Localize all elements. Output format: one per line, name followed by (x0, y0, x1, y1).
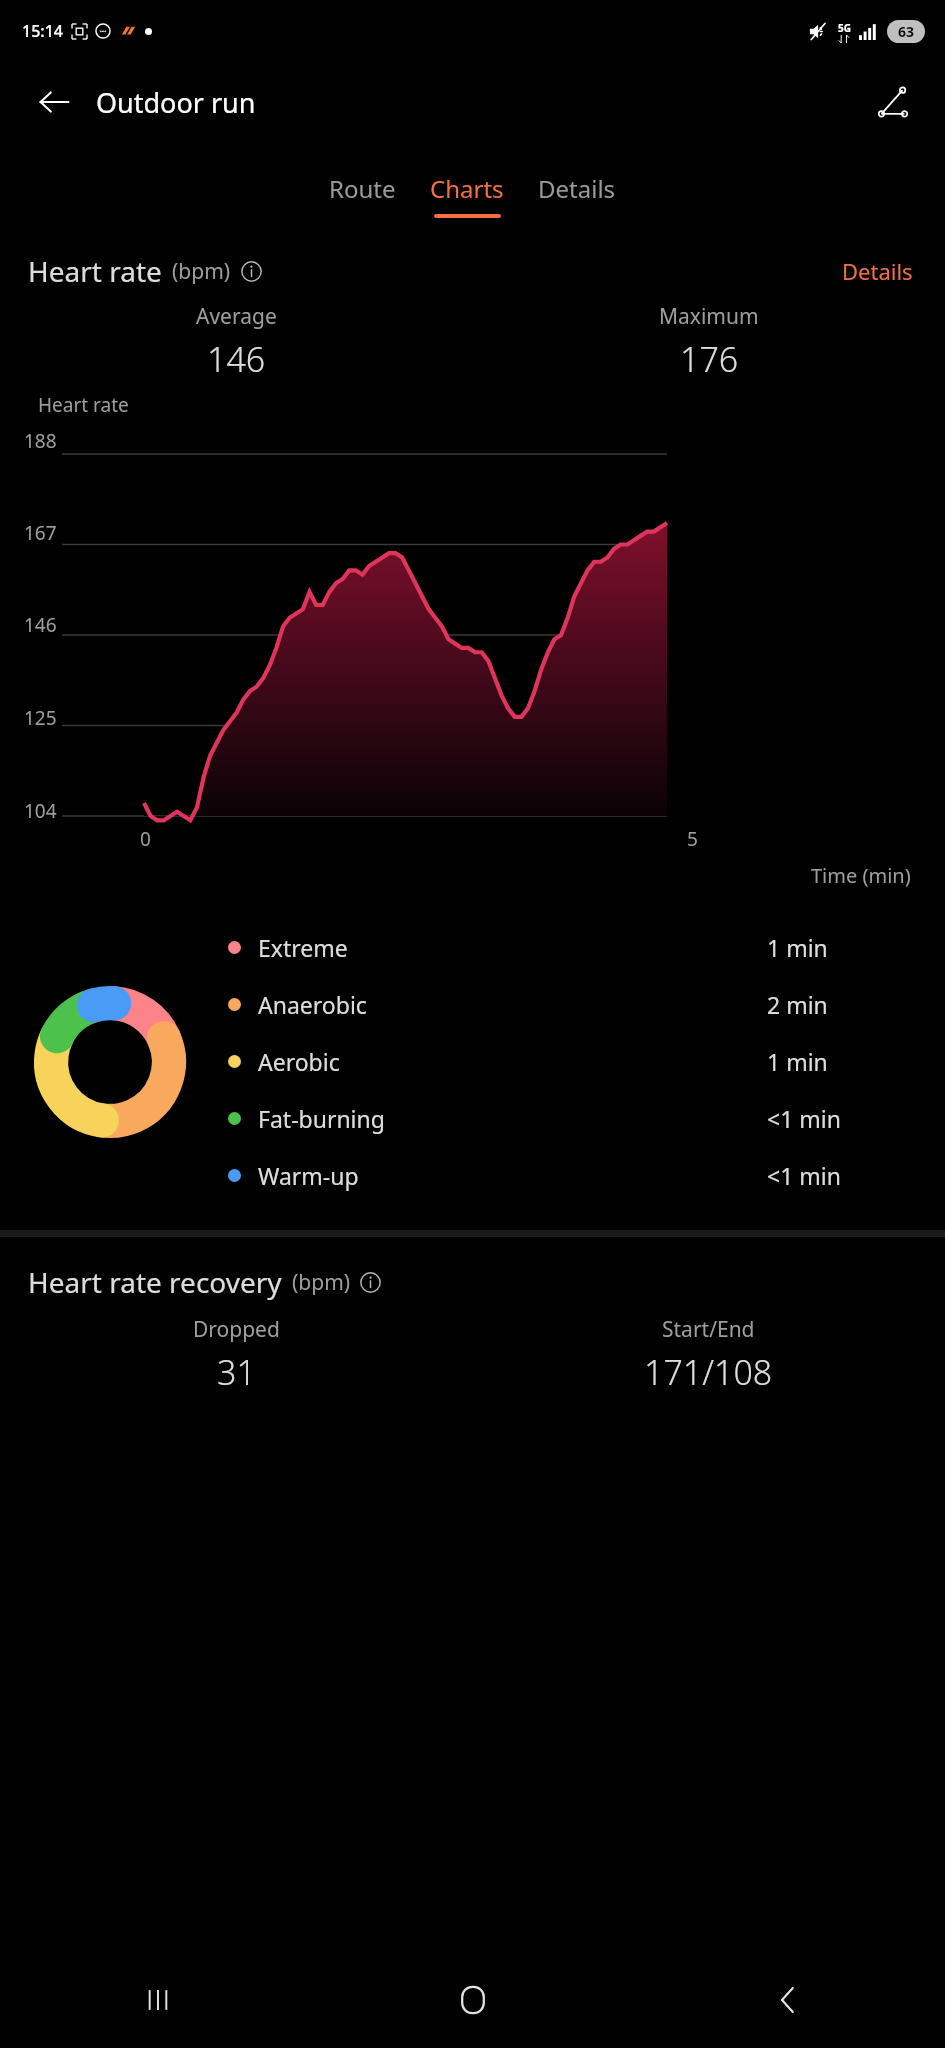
staticText: <1 min (767, 1160, 841, 1191)
staticText: Start/End (662, 1315, 755, 1344)
staticText: 1 min (767, 932, 828, 963)
staticText: Anaerobic (258, 989, 367, 1020)
staticText: 1 min (767, 1046, 828, 1077)
staticText: Time (min) (811, 862, 911, 889)
staticText: Aerobic (258, 1046, 340, 1077)
button[interactable]: Recent apps (0, 1952, 315, 2048)
staticText: Details (842, 256, 913, 286)
button[interactable]: Back (30, 78, 78, 126)
staticText: Extreme (258, 932, 348, 963)
button[interactable]: Fat-burning (228, 1090, 917, 1147)
staticText: 5G (838, 21, 851, 35)
button[interactable]: Share (869, 78, 917, 126)
staticText: Heart rate (38, 392, 129, 418)
staticText: 31 (217, 1349, 256, 1395)
staticText: Maximum (659, 302, 759, 331)
button[interactable]: Details (528, 168, 626, 222)
staticText: 15:14 (22, 20, 63, 42)
staticText: 5 (687, 826, 698, 852)
staticText: Warm-up (258, 1160, 359, 1191)
staticText: 63 (898, 22, 915, 41)
button[interactable]: Warm-up (228, 1147, 917, 1204)
staticText: Heart rate (28, 252, 162, 290)
staticText: 188 (24, 428, 57, 454)
button[interactable]: Details (838, 252, 917, 290)
staticText: Fat-burning (258, 1103, 385, 1134)
staticText: 2 min (767, 989, 828, 1020)
staticText: 125 (24, 705, 57, 731)
staticText: Dropped (193, 1315, 280, 1344)
staticText: <1 min (767, 1103, 841, 1134)
staticText: (bpm) (172, 257, 231, 286)
staticText: 0 (140, 826, 151, 852)
staticText: Outdoor run (96, 84, 256, 121)
button[interactable]: Charts (420, 168, 514, 222)
staticText: Charts (430, 172, 504, 205)
staticText: (bpm) (292, 1268, 351, 1297)
staticText: 176 (680, 336, 739, 382)
button[interactable]: Extreme (228, 919, 917, 976)
staticText: Heart rate recovery (28, 1263, 282, 1301)
staticText: 146 (207, 336, 266, 382)
staticText: Details (538, 172, 616, 205)
staticText: 146 (24, 612, 57, 638)
staticText: 167 (24, 520, 57, 546)
button[interactable]: Anaerobic (228, 976, 917, 1033)
button[interactable]: Home (315, 1952, 630, 2048)
staticText: Route (329, 172, 396, 205)
staticText: Average (196, 302, 277, 331)
staticText: 104 (24, 798, 57, 824)
staticText: 171/108 (644, 1349, 773, 1395)
button[interactable]: Back (630, 1952, 945, 2048)
button[interactable]: Aerobic (228, 1033, 917, 1090)
button[interactable]: Route (319, 168, 406, 222)
